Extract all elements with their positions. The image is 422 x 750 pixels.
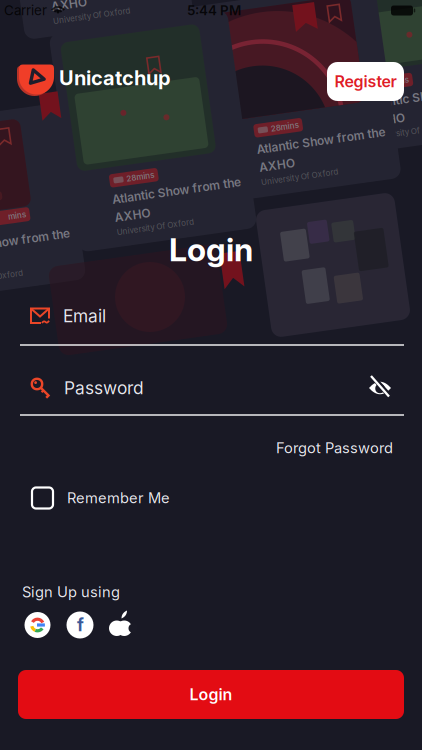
button[interactable]: Forgot Password [193, 439, 393, 457]
staticText: University Of Oxford [42, 10, 120, 19]
staticText: Sign Up using [22, 583, 120, 601]
staticText: 5:44 PM [187, 3, 241, 18]
staticText: University Of Oxford [249, 173, 327, 182]
staticText: University Of Oxford [0, 274, 13, 283]
staticText: University Of Oxford [360, 128, 422, 137]
staticText: Carrier [4, 3, 47, 18]
staticText: Forgot Password [276, 439, 393, 457]
button[interactable]: Remember Me [32, 487, 282, 508]
button[interactable]: Sign up with Facebook [66, 611, 93, 638]
staticText: Atlantic Show from the AXHO [0, 238, 65, 271]
staticText: Atlantic Show from the AXHO [360, 92, 422, 125]
staticText: Login [169, 231, 253, 268]
button[interactable]: Register [327, 62, 404, 101]
staticText: Register [334, 72, 396, 91]
staticText: Password [64, 378, 144, 398]
button[interactable]: Login [18, 670, 404, 719]
staticText: 28mins [377, 76, 405, 85]
button[interactable]: Sign up with Apple [108, 610, 133, 638]
button[interactable]: Sign up with Google [24, 612, 50, 638]
staticText: Atlantic Show from the AXHO [103, 186, 233, 219]
staticText: Unicatchup [59, 66, 171, 90]
button[interactable]: Show password [365, 373, 395, 403]
button[interactable]: Email [0, 290, 422, 346]
staticText: Login [189, 685, 232, 704]
button[interactable]: Password [0, 360, 422, 416]
staticText: 28mins [120, 170, 148, 179]
staticText: f [77, 615, 84, 635]
staticText: mins [8, 212, 26, 222]
staticText: Atlantic Show from the AXHO [42, 0, 172, 7]
staticText: University Of Oxford [103, 222, 181, 231]
staticText: Email [63, 306, 106, 326]
staticText: 28mins [266, 121, 294, 130]
staticText: Remember Me [67, 489, 170, 507]
staticText: Atlantic Show from the AXHO [249, 137, 379, 170]
